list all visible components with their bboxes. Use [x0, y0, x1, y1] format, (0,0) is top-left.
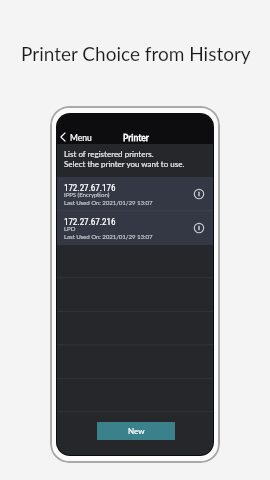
staticText: Last Used On: 2021/01/29 13:07 — [64, 233, 153, 240]
staticText: Menu — [70, 133, 92, 143]
staticText: IPPS (Encryption) — [64, 191, 110, 198]
button[interactable]: 172.27.67.176 — [57, 177, 213, 211]
staticText: Printer — [123, 132, 150, 142]
staticText: LPD — [64, 225, 76, 232]
staticText: Last Used On: 2021/01/29 13:07 — [64, 199, 153, 206]
button[interactable]: Printer information — [193, 188, 205, 200]
staticText: List of registered printers. — [64, 149, 154, 159]
staticText: New — [128, 426, 145, 436]
staticText: Select the printer you want to use. — [64, 159, 185, 169]
staticText: 172.27.67.216 — [64, 216, 116, 227]
button[interactable]: 172.27.67.216 — [57, 211, 213, 245]
button[interactable]: New — [97, 422, 175, 440]
staticText: 172.27.67.176 — [64, 182, 116, 193]
button[interactable]: Menu — [57, 129, 96, 145]
button[interactable]: Printer information — [193, 222, 205, 234]
staticText: Printer Choice from History — [21, 42, 251, 65]
